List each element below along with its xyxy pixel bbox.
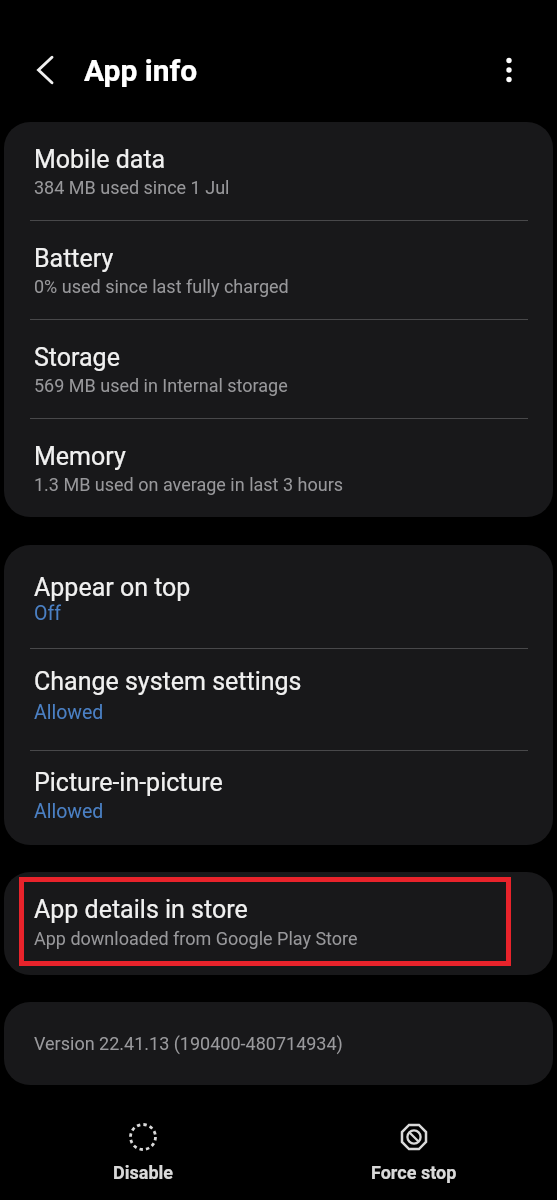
staticText: Picture-in-picture — [34, 768, 223, 797]
button[interactable] — [489, 50, 529, 90]
button[interactable]: Disable — [73, 1123, 213, 1183]
staticText: App downloaded from Google Play Store — [34, 928, 358, 949]
button[interactable]: Storage — [4, 320, 553, 418]
staticText: Force stop — [371, 1162, 457, 1183]
button[interactable] — [25, 50, 65, 90]
staticText: Allowed — [34, 800, 104, 823]
staticText: Storage — [34, 343, 120, 372]
staticText: Appear on top — [34, 573, 191, 602]
staticText: Version 22.41.13 (190400-480714934) — [34, 1033, 343, 1054]
staticText: Mobile data — [34, 145, 166, 174]
staticText: Allowed — [34, 701, 104, 724]
staticText: Off — [34, 602, 61, 625]
button[interactable]: Memory — [4, 419, 553, 517]
button[interactable]: Force stop — [344, 1123, 484, 1183]
staticText: Change system settings — [34, 667, 302, 696]
staticText: App info — [84, 53, 198, 88]
staticText: App details in store — [34, 895, 248, 924]
button[interactable] — [4, 751, 553, 845]
staticText: 384 MB used since 1 Jul — [34, 177, 230, 198]
staticText: 569 MB used in Internal storage — [34, 375, 288, 396]
button[interactable]: Mobile data — [4, 122, 553, 220]
staticText: 1.3 MB used on average in last 3 hours — [34, 474, 344, 495]
button[interactable]: Battery — [4, 221, 553, 319]
button[interactable] — [4, 545, 553, 648]
staticText: Battery — [34, 244, 114, 273]
button[interactable] — [4, 649, 553, 750]
staticText: Disable — [113, 1162, 174, 1183]
staticText: Memory — [34, 442, 126, 471]
button[interactable]: App details in store — [4, 872, 553, 975]
staticText: 0% used since last fully charged — [34, 276, 289, 297]
